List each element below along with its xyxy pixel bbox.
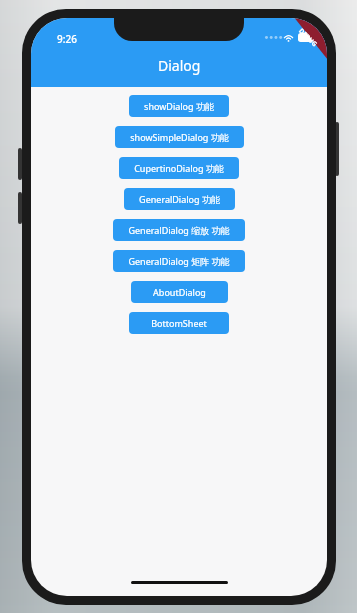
button[interactable]: showDialog 功能 [129,95,229,117]
button[interactable]: AboutDialog [131,281,228,303]
staticText: CupertinoDialog 功能 [134,162,224,174]
button[interactable]: GeneralDialog 功能 [124,188,235,210]
button[interactable]: GeneralDialog 矩阵 功能 [113,250,245,272]
staticText: Dialog [158,56,201,75]
staticText: showDialog 功能 [144,100,214,112]
staticText: BottomSheet [151,317,207,329]
button[interactable]: BottomSheet [129,312,229,334]
staticText: GeneralDialog 矩阵 功能 [128,255,230,267]
button[interactable]: GeneralDialog 缩放 功能 [113,219,245,241]
staticText: GeneralDialog 功能 [139,193,220,205]
staticText: showSimpleDialog 功能 [130,131,229,143]
staticText: DEBUG [297,26,320,49]
button[interactable]: showSimpleDialog 功能 [115,126,244,148]
staticText: AboutDialog [153,286,206,298]
button[interactable]: CupertinoDialog 功能 [119,157,239,179]
staticText: GeneralDialog 缩放 功能 [128,224,230,236]
staticText: 9:26 [57,32,77,46]
